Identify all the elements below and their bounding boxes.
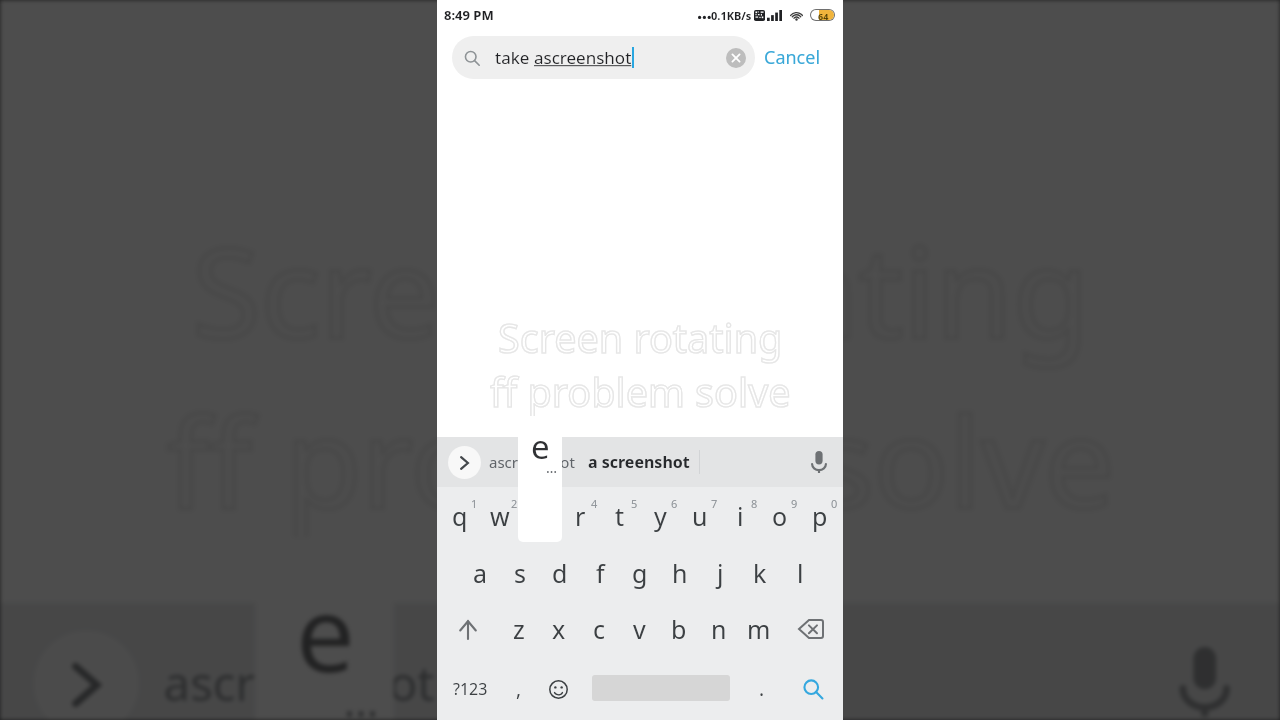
staticText: 4 xyxy=(591,496,598,511)
staticText: Cancel xyxy=(764,45,821,70)
staticText: z xyxy=(513,612,525,646)
button[interactable]: Cancel xyxy=(755,39,830,76)
staticText: 64 xyxy=(818,10,829,20)
button[interactable]: u xyxy=(680,487,720,545)
staticText: 7 xyxy=(711,496,718,511)
button[interactable]: f xyxy=(580,545,620,600)
button[interactable]: z xyxy=(499,600,539,658)
staticText: 5 xyxy=(631,496,638,511)
button[interactable]: a screenshot xyxy=(588,451,690,473)
button[interactable]: d xyxy=(540,545,580,600)
staticText: e xyxy=(296,562,356,704)
button[interactable]: w xyxy=(480,487,520,545)
button[interactable]: . xyxy=(741,658,783,720)
button[interactable]: s xyxy=(500,545,540,600)
staticText: n xyxy=(711,612,727,646)
button[interactable]: b xyxy=(659,600,699,658)
staticText: k xyxy=(753,556,767,590)
staticText: Screen rotating xyxy=(498,311,783,365)
button[interactable]: a screenshot xyxy=(476,647,798,716)
button[interactable]: x xyxy=(539,600,579,658)
staticText: ?123 xyxy=(453,678,488,700)
button[interactable]: Search xyxy=(783,658,843,720)
button[interactable]: j xyxy=(700,545,740,600)
staticText: e xyxy=(531,424,550,469)
staticText: ascreenshot xyxy=(489,452,575,472)
button[interactable]: o xyxy=(760,487,800,545)
staticText: ff problem solve xyxy=(490,365,791,419)
staticText: … xyxy=(546,458,558,477)
staticText: t xyxy=(615,499,625,533)
staticText: a screenshot xyxy=(476,647,798,716)
button[interactable]: h xyxy=(660,545,700,600)
button[interactable]: l xyxy=(780,545,820,600)
button[interactable]: ascreenshot xyxy=(489,452,575,472)
staticText: 8:49 PM xyxy=(444,6,494,24)
staticText: l xyxy=(797,556,804,590)
staticText: 0 xyxy=(831,496,838,511)
staticText: c xyxy=(593,612,606,646)
button[interactable]: p xyxy=(800,487,840,545)
button[interactable]: Shift xyxy=(437,600,499,658)
button[interactable]: take xyxy=(452,36,755,79)
button[interactable]: ?123 xyxy=(437,658,503,720)
staticText: w xyxy=(490,499,510,533)
staticText: take xyxy=(495,46,534,69)
button[interactable]: ascreenshot xyxy=(164,650,435,713)
staticText: 0.1KB/s xyxy=(711,8,752,23)
button[interactable]: t xyxy=(600,487,640,545)
staticText: 8 xyxy=(751,496,758,511)
staticText: a screenshot xyxy=(588,451,690,473)
button[interactable]: Emoji xyxy=(535,658,581,720)
button[interactable]: , xyxy=(503,658,535,720)
staticText: u xyxy=(692,499,708,533)
staticText: ascreenshot xyxy=(534,46,632,69)
staticText: m xyxy=(747,612,771,646)
staticText: a xyxy=(473,556,488,590)
button[interactable]: m xyxy=(739,600,779,658)
staticText: y xyxy=(654,499,667,533)
staticText: d xyxy=(552,556,568,590)
staticText: 2 xyxy=(511,496,518,511)
button[interactable]: q xyxy=(440,487,480,545)
staticText: j xyxy=(717,556,724,590)
staticText: g xyxy=(632,556,648,590)
staticText: . xyxy=(759,676,765,702)
button[interactable]: Voice input xyxy=(1154,631,1255,720)
button[interactable]: Voice input xyxy=(803,446,835,478)
button[interactable]: e xyxy=(520,487,560,545)
staticText: Screen rotating xyxy=(192,205,1091,376)
staticText: , xyxy=(516,676,522,702)
staticText: f xyxy=(596,556,605,590)
button[interactable]: Clear text xyxy=(726,48,746,68)
button[interactable]: i xyxy=(720,487,760,545)
button[interactable]: c xyxy=(579,600,619,658)
staticText: 1 xyxy=(471,496,478,511)
staticText: o xyxy=(772,499,788,533)
button[interactable]: Space xyxy=(581,658,741,720)
button[interactable]: r xyxy=(560,487,600,545)
button[interactable]: k xyxy=(740,545,780,600)
staticText: 6 xyxy=(671,496,678,511)
staticText: … xyxy=(343,669,381,720)
button[interactable]: g xyxy=(620,545,660,600)
staticText: x xyxy=(552,612,566,646)
staticText: ff problem solve xyxy=(167,376,1116,546)
button[interactable]: a xyxy=(460,545,500,600)
staticText: h xyxy=(672,556,688,590)
button[interactable]: v xyxy=(619,600,659,658)
button[interactable]: n xyxy=(699,600,739,658)
button[interactable]: y xyxy=(640,487,680,545)
button[interactable]: More suggestions xyxy=(34,631,138,720)
button[interactable]: Backspace xyxy=(779,600,843,658)
staticText: s xyxy=(514,556,526,590)
staticText: 9 xyxy=(791,496,798,511)
button[interactable]: More suggestions xyxy=(448,446,481,479)
staticText: ascreenshot xyxy=(164,650,435,713)
staticText: p xyxy=(812,499,828,533)
staticText: q xyxy=(452,499,468,533)
staticText: i xyxy=(737,499,744,533)
staticText: b xyxy=(671,612,687,646)
